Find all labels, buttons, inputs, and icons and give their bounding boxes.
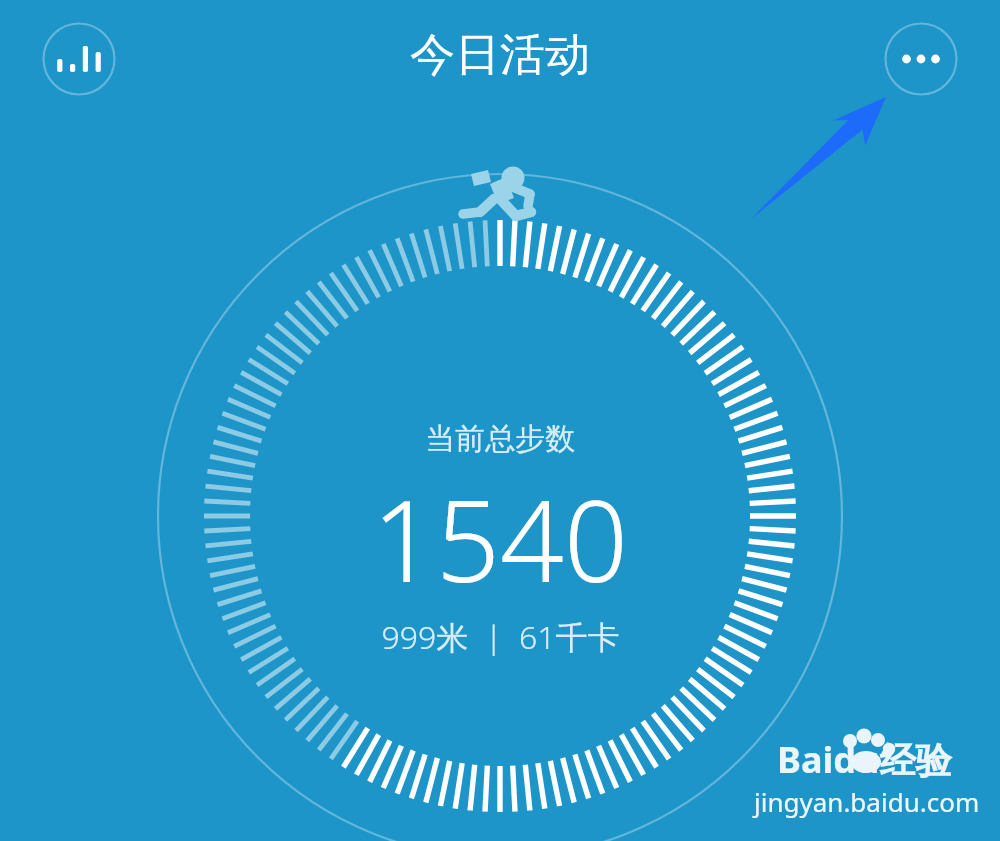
staticText: jingyan.baidu.com [754,784,980,819]
button[interactable]: More options [884,22,958,96]
staticText: 1540 [372,462,628,615]
staticText: Baidu经验 [777,735,952,784]
staticText: 当前总步数 [425,420,575,458]
staticText: 今日活动 [410,27,590,84]
staticText: 999米 | 61千卡 [381,615,620,659]
button[interactable]: Statistics [42,22,116,96]
